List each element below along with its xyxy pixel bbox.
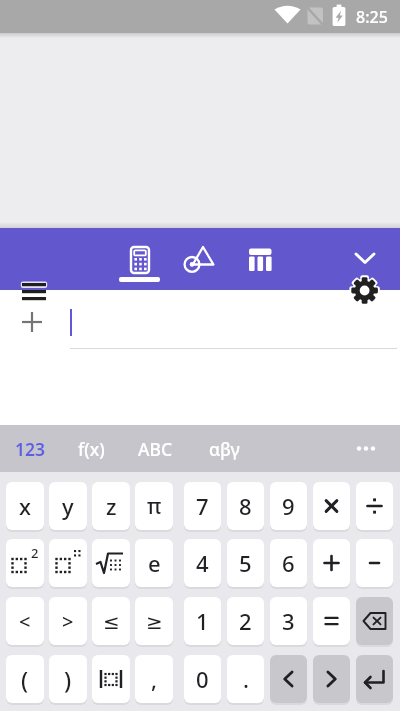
staticText: z (106, 491, 117, 521)
button[interactable]: ≤ (92, 597, 130, 645)
staticText: π (147, 492, 162, 521)
button[interactable]: f(x) (68, 425, 114, 472)
staticText: y (62, 491, 74, 521)
button[interactable] (238, 234, 283, 286)
button[interactable] (174, 234, 219, 286)
staticText: 0 (196, 664, 209, 694)
button[interactable]: 9 (270, 482, 307, 530)
button[interactable] (346, 272, 384, 310)
staticText: ) (64, 664, 72, 695)
staticText: f(x) (78, 437, 105, 461)
button[interactable]: 2 (227, 597, 264, 645)
staticText: ≥ (146, 610, 163, 633)
button[interactable] (348, 242, 382, 274)
button[interactable] (92, 539, 130, 587)
button[interactable]: 123 (8, 425, 53, 472)
staticText: 2 (31, 544, 39, 562)
button[interactable] (270, 655, 307, 703)
button[interactable]: 4 (184, 539, 221, 587)
button[interactable] (92, 655, 130, 703)
staticText: . (243, 664, 249, 694)
button[interactable] (356, 655, 393, 703)
button[interactable] (356, 482, 393, 530)
button[interactable] (356, 597, 393, 645)
button[interactable]: π (135, 482, 173, 530)
staticText: 3 (282, 606, 295, 636)
staticText: 7 (196, 491, 209, 521)
staticText: ≤ (103, 610, 120, 633)
button[interactable]: αβγ (201, 425, 247, 472)
button[interactable] (14, 304, 50, 340)
button[interactable] (313, 655, 350, 703)
button[interactable]: 8 (227, 482, 264, 530)
button[interactable] (344, 425, 388, 472)
button[interactable]: , (135, 655, 173, 703)
staticText: αβγ (209, 437, 240, 461)
button[interactable]: 7 (184, 482, 221, 530)
staticText: 8 (239, 491, 252, 521)
button[interactable] (313, 597, 350, 645)
button[interactable] (120, 234, 165, 286)
button[interactable] (49, 539, 87, 587)
button[interactable] (356, 539, 393, 587)
button[interactable]: y (49, 482, 87, 530)
staticText: 4 (196, 548, 209, 578)
button[interactable]: 6 (270, 539, 307, 587)
button[interactable]: z (92, 482, 130, 530)
button[interactable]: x (6, 482, 44, 530)
staticText: x (19, 491, 31, 521)
button[interactable] (313, 482, 350, 530)
staticText: 2 (239, 606, 252, 636)
button[interactable]: 3 (270, 597, 307, 645)
staticText: ABC (138, 437, 173, 461)
staticText: ( (21, 664, 29, 695)
staticText: > (62, 608, 74, 635)
staticText: 123 (15, 437, 46, 461)
button[interactable]: 0 (184, 655, 221, 703)
staticText: , (151, 664, 158, 694)
button[interactable]: . (227, 655, 264, 703)
button[interactable]: ) (49, 655, 87, 703)
button[interactable]: e (135, 539, 173, 587)
button[interactable]: ( (6, 655, 44, 703)
staticText: 8:25 (356, 6, 388, 28)
staticText: 6 (282, 548, 295, 578)
staticText: e (148, 548, 161, 578)
button[interactable] (14, 275, 56, 307)
staticText: 9 (282, 491, 295, 521)
button[interactable]: 5 (227, 539, 264, 587)
staticText: 5 (239, 548, 252, 578)
button[interactable]: ≥ (135, 597, 173, 645)
button[interactable]: ABC (132, 425, 178, 472)
button[interactable]: < (6, 597, 44, 645)
staticText: < (19, 608, 31, 635)
button[interactable]: > (49, 597, 87, 645)
button[interactable]: 2 (6, 539, 44, 587)
button[interactable]: 1 (184, 597, 221, 645)
button[interactable] (313, 539, 350, 587)
staticText: 1 (196, 606, 209, 636)
